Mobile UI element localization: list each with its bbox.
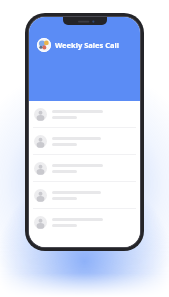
button[interactable] xyxy=(29,209,140,235)
button[interactable] xyxy=(29,128,140,154)
other: Group avatar xyxy=(37,38,51,52)
button[interactable] xyxy=(29,155,140,181)
button[interactable] xyxy=(29,101,140,127)
button[interactable] xyxy=(29,182,140,208)
button[interactable]: Group avatar xyxy=(34,36,123,54)
staticText: Weekly Sales Call xyxy=(55,40,120,50)
